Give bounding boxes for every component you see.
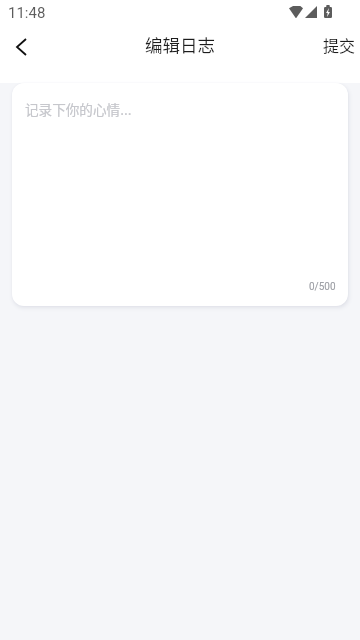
staticText: 0/500 xyxy=(309,281,336,293)
staticText: 11:48 xyxy=(8,4,46,22)
button[interactable]: Back xyxy=(0,24,42,68)
button[interactable]: 记录下你的心情 xyxy=(12,83,348,306)
staticText: 提交 xyxy=(323,33,356,56)
button[interactable]: 提交 xyxy=(307,25,360,68)
staticText: 记录下你的心情... xyxy=(25,99,132,119)
staticText: 编辑日志 xyxy=(145,32,215,57)
